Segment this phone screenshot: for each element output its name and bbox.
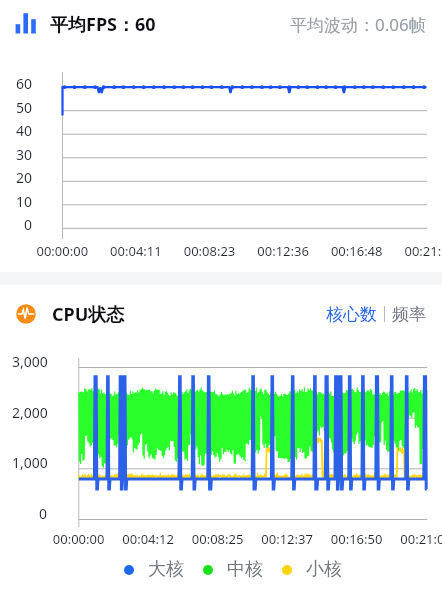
staticText: 平均FPS：60 [50, 12, 156, 37]
other: CPU [16, 304, 36, 324]
staticText: 平均波动：0.06帧 [290, 13, 426, 36]
staticText: CPU状态 [52, 302, 125, 327]
staticText: 核心数 [326, 304, 377, 325]
button[interactable]: 大核 [124, 558, 184, 581]
staticText: 小核 [306, 558, 342, 581]
button[interactable]: 核心数 [324, 297, 379, 332]
staticText: 中核 [227, 558, 263, 581]
button[interactable]: 中核 [203, 558, 263, 581]
button[interactable]: 小核 [282, 558, 342, 581]
other: FPS [15, 13, 37, 35]
button[interactable]: 频率 [390, 297, 428, 332]
staticText: 大核 [148, 558, 184, 581]
staticText: 频率 [392, 304, 426, 325]
